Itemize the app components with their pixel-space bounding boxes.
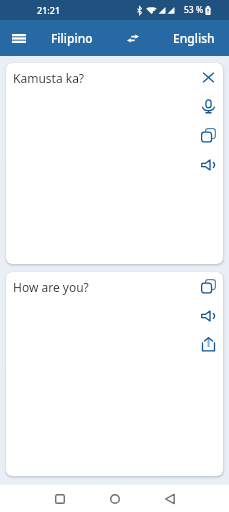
button[interactable]: Open navigation menu bbox=[4, 23, 34, 53]
button[interactable]: Back bbox=[157, 486, 182, 511]
button[interactable]: Clear text bbox=[193, 63, 223, 92]
button[interactable]: Swap languages bbox=[118, 23, 148, 53]
staticText: 21:21 bbox=[37, 4, 61, 16]
staticText: Filipino bbox=[51, 30, 93, 46]
button[interactable]: English bbox=[158, 20, 229, 56]
staticText: How are you? bbox=[13, 279, 185, 295]
staticText: 53 % bbox=[184, 4, 204, 16]
staticText: English bbox=[173, 30, 215, 46]
button[interactable]: Speech input bbox=[193, 92, 223, 121]
button[interactable]: Copy bbox=[193, 272, 223, 301]
staticText: Kamusta ka? bbox=[13, 70, 185, 86]
button[interactable]: Copy bbox=[193, 121, 223, 150]
button[interactable]: Filipino bbox=[36, 20, 108, 56]
button[interactable]: Recents bbox=[47, 486, 72, 511]
button[interactable]: Listen bbox=[193, 301, 223, 330]
button[interactable]: Home bbox=[102, 486, 127, 511]
button[interactable]: Listen bbox=[193, 150, 223, 179]
button[interactable]: Share bbox=[193, 330, 223, 359]
